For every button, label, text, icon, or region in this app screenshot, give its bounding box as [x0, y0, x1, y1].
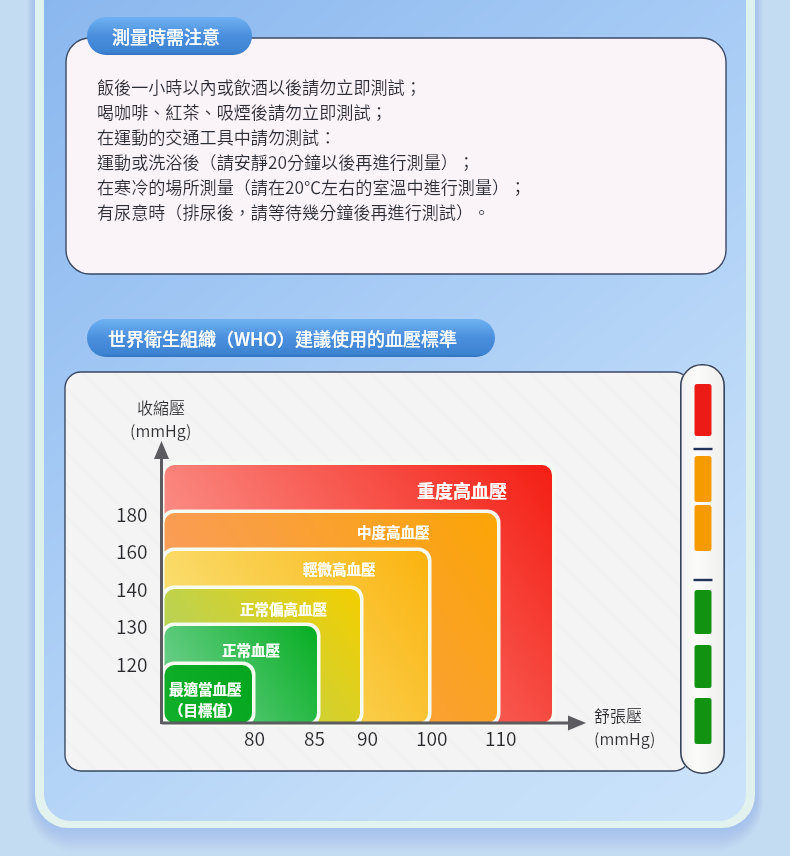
- staticText: （目標值）: [169, 699, 242, 720]
- staticText: 世界衛生組織（WHO）建議使用的血壓標準: [108, 325, 457, 351]
- staticText: 90: [357, 724, 379, 752]
- staticText: 正常血壓: [222, 639, 280, 660]
- button[interactable]: 世界衛生組織（WHO）建議使用的血壓標準: [87, 319, 495, 357]
- staticText: 180: [116, 500, 148, 528]
- staticText: 飯後一小時以內或飲酒以後請勿立即測試；: [97, 74, 422, 99]
- staticText: 重度高血壓: [417, 477, 507, 503]
- button[interactable]: [680, 364, 725, 774]
- staticText: 在寒冷的場所測量（請在20℃左右的室溫中進行測量）；: [97, 174, 527, 199]
- staticText: 中度高血壓: [357, 521, 430, 542]
- staticText: 85: [304, 724, 326, 752]
- staticText: 160: [116, 537, 148, 565]
- staticText: 運動或洗浴後（請安靜20分鐘以後再進行測量）；: [97, 149, 475, 174]
- staticText: 130: [116, 612, 148, 640]
- staticText: 舒張壓: [594, 703, 643, 726]
- staticText: 100: [416, 724, 448, 752]
- staticText: 110: [485, 724, 517, 752]
- staticText: 測量時需注意: [112, 23, 220, 49]
- staticText: 80: [244, 724, 266, 752]
- staticText: 140: [116, 575, 148, 603]
- staticText: 最適當血壓: [169, 678, 242, 699]
- staticText: 有尿意時（排尿後，請等待幾分鐘後再進行測試）。: [97, 199, 491, 224]
- staticText: (mmHg): [594, 726, 656, 749]
- staticText: 收縮壓: [137, 395, 186, 418]
- button[interactable]: 測量時需注意: [87, 17, 252, 55]
- staticText: (mmHg): [130, 418, 192, 441]
- staticText: 正常偏高血壓: [240, 598, 327, 619]
- staticText: 喝咖啡、紅茶、吸煙後請勿立即測試；: [97, 99, 388, 124]
- staticText: 120: [116, 650, 148, 678]
- staticText: 輕微高血壓: [303, 558, 376, 579]
- staticText: 在運動的交通工具中請勿測試：: [97, 124, 337, 149]
